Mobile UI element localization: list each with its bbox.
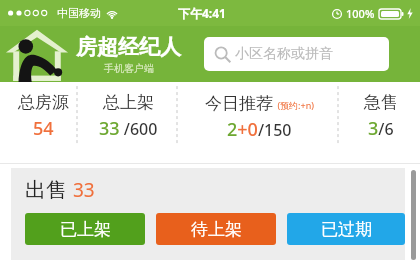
- button[interactable]: 待上架: [156, 213, 276, 245]
- staticText: 已上架: [60, 219, 111, 240]
- staticText: 小区名称或拼音: [235, 45, 333, 63]
- staticText: 已过期: [321, 219, 372, 240]
- staticText: 33: [73, 177, 95, 203]
- staticText: 3/6: [368, 116, 394, 141]
- staticText: 今日推荐 (预约:+n): [205, 91, 314, 114]
- button[interactable]: 急售: [342, 92, 420, 141]
- button[interactable]: 已上架: [25, 213, 145, 245]
- staticText: 33 /600: [99, 116, 158, 141]
- staticText: 出售: [25, 177, 67, 203]
- staticText: 待上架: [191, 219, 242, 240]
- staticText: 手机客户端: [104, 62, 154, 75]
- button[interactable]: 总房源: [10, 92, 77, 141]
- button[interactable]: 总上架: [80, 92, 177, 141]
- button[interactable]: 小区名称或拼音: [204, 37, 389, 71]
- staticText: 100%: [346, 6, 375, 21]
- staticText: 中国移动: [57, 6, 101, 20]
- staticText: 2+0/150: [227, 117, 292, 142]
- button[interactable]: 今日推荐 (预约:+n): [180, 91, 338, 142]
- staticText: 急售: [364, 92, 398, 113]
- staticText: 下午4:41: [178, 5, 226, 21]
- button[interactable]: 已过期: [287, 213, 405, 245]
- staticText: 总房源: [18, 92, 69, 113]
- staticText: 房超经纪人: [76, 34, 181, 60]
- staticText: 总上架: [103, 92, 154, 113]
- staticText: 54: [33, 116, 54, 141]
